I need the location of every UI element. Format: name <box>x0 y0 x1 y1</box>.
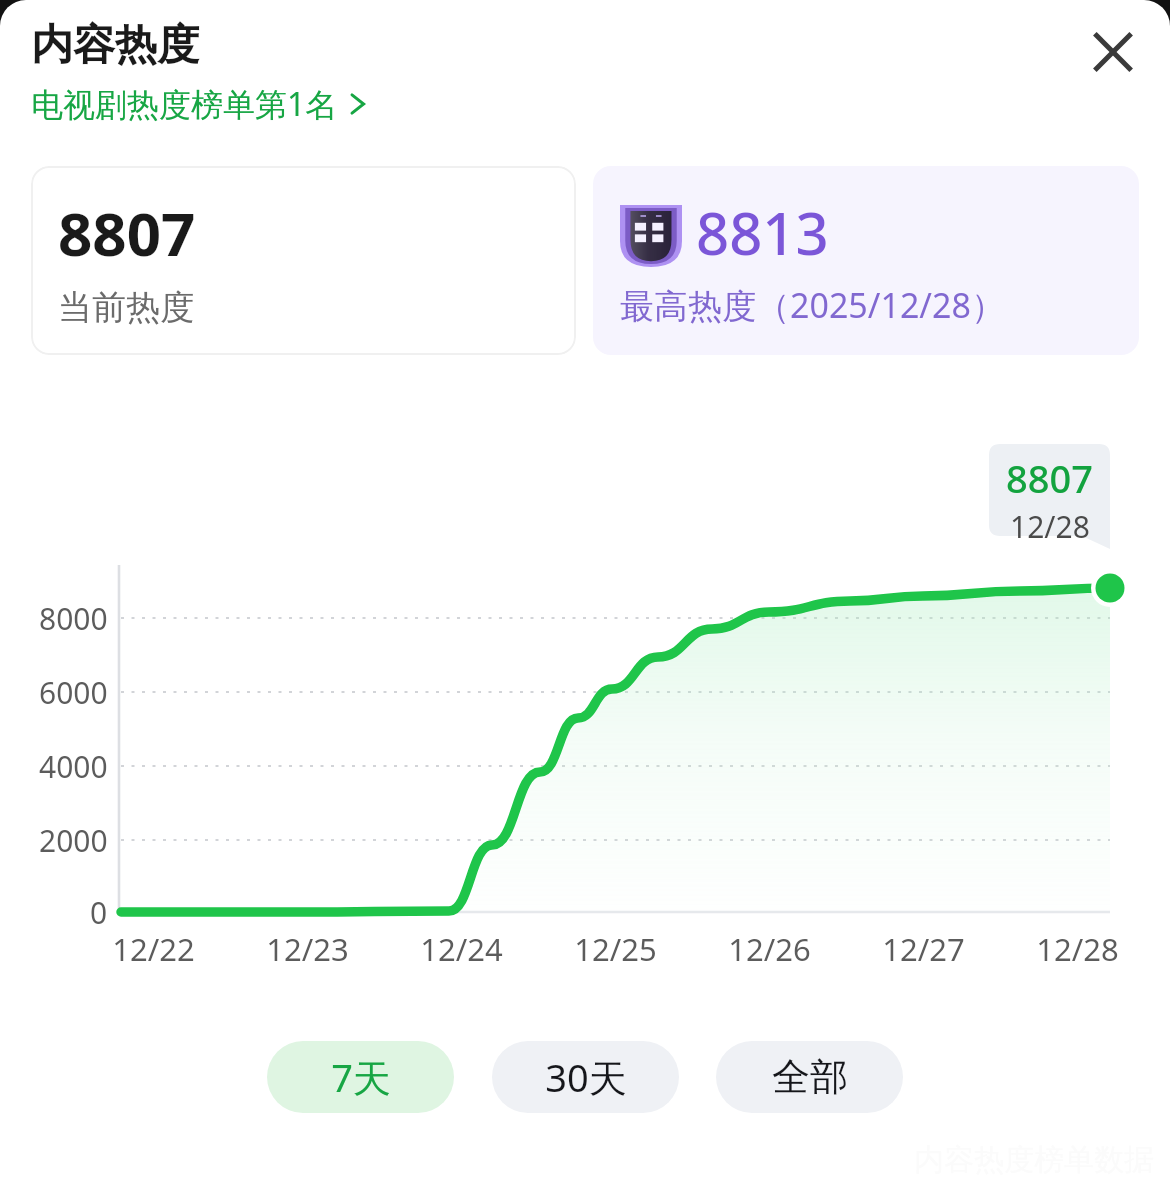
staticText: 当前热度 <box>58 286 194 329</box>
staticText: 12/28 <box>1010 506 1090 547</box>
staticText: 8807 <box>1006 452 1093 504</box>
staticText: 内容热度 <box>31 19 199 72</box>
button[interactable]: Close <box>1079 18 1147 86</box>
button[interactable]: 8807 <box>31 166 576 355</box>
staticText: 12/27 <box>882 928 965 970</box>
staticText: 30天 <box>545 1051 627 1103</box>
staticText: 12/26 <box>728 928 811 970</box>
button[interactable]: 全部 <box>716 1041 903 1113</box>
button[interactable]: 7天 <box>267 1041 454 1113</box>
staticText: 8807 <box>58 192 196 274</box>
staticText: 4000 <box>39 746 108 787</box>
button[interactable]: 30天 <box>492 1041 679 1113</box>
staticText: 12/28 <box>1036 928 1119 970</box>
staticText: 电视剧热度榜单第1名 <box>31 82 338 126</box>
staticText: 7天 <box>331 1051 391 1103</box>
staticText: 8813 <box>696 193 829 272</box>
staticText: 全部 <box>772 1053 848 1101</box>
staticText: 最高热度（2025/12/28） <box>620 282 1005 328</box>
staticText: 12/25 <box>574 928 657 970</box>
staticText: 12/24 <box>420 928 503 970</box>
button[interactable]: 8813 <box>593 166 1139 355</box>
staticText: 2000 <box>39 820 108 861</box>
staticText: 0 <box>90 892 108 933</box>
staticText: 12/22 <box>112 928 195 970</box>
staticText: 12/23 <box>266 928 349 970</box>
staticText: 6000 <box>39 672 108 713</box>
button[interactable]: 电视剧热度榜单第1名 <box>31 80 368 128</box>
staticText: 8000 <box>39 598 108 639</box>
